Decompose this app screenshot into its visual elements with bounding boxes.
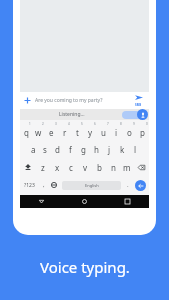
staticText: b	[97, 162, 102, 173]
staticText: Voice typing.	[40, 257, 130, 277]
button[interactable]: 3	[45, 120, 58, 140]
button[interactable]: English	[62, 181, 121, 190]
staticText: d	[55, 144, 60, 155]
button[interactable]: m	[120, 158, 134, 176]
button[interactable]: d	[51, 140, 64, 158]
button[interactable]: 7	[97, 120, 110, 140]
staticText: l	[134, 144, 137, 155]
button[interactable]: v	[78, 158, 92, 176]
button[interactable]: Enter	[132, 176, 149, 194]
staticText: n	[111, 162, 116, 173]
staticText: a	[31, 144, 36, 155]
button[interactable]: Backspace	[134, 158, 149, 176]
button[interactable]: Send SMS	[128, 92, 149, 109]
staticText: Listening...	[59, 111, 85, 118]
staticText: .	[127, 181, 129, 189]
button[interactable]: n	[106, 158, 120, 176]
button[interactable]: x	[50, 158, 64, 176]
button[interactable]: s	[39, 140, 51, 158]
staticText: 0	[146, 122, 148, 126]
staticText: 1	[29, 122, 31, 126]
button[interactable]: l	[129, 140, 142, 158]
staticText: r	[63, 127, 67, 138]
staticText: m	[123, 162, 131, 173]
button[interactable]: h	[90, 140, 103, 158]
staticText: 4	[68, 122, 70, 126]
button[interactable]: 9	[123, 120, 136, 140]
button[interactable]: Back	[20, 195, 63, 208]
staticText: 9	[133, 122, 135, 126]
staticText: f	[69, 144, 72, 155]
staticText: x	[55, 162, 60, 173]
staticText: e	[49, 127, 54, 138]
staticText: y	[88, 127, 93, 138]
staticText: 6	[94, 122, 96, 126]
staticText: ?123	[24, 182, 35, 189]
staticText: t	[76, 127, 79, 138]
staticText: 3	[55, 122, 57, 126]
button[interactable]: j	[103, 140, 116, 158]
staticText: q	[24, 127, 29, 138]
button[interactable]: 8	[110, 120, 123, 140]
button[interactable]: Add attachment	[20, 92, 35, 109]
button[interactable]: 5	[71, 120, 84, 140]
button[interactable]: ,	[39, 176, 48, 194]
button[interactable]: 2	[32, 120, 45, 140]
staticText: w	[35, 127, 42, 138]
button[interactable]: Emoji	[48, 176, 60, 194]
button[interactable]: g	[77, 140, 90, 158]
staticText: Are you coming to my party?	[35, 97, 128, 104]
staticText: 8	[120, 122, 122, 126]
staticText: o	[127, 127, 132, 138]
staticText: p	[140, 127, 145, 138]
button[interactable]: Shift	[20, 158, 35, 176]
staticText: English	[85, 183, 99, 188]
button[interactable]: 4	[58, 120, 71, 140]
staticText: c	[69, 162, 73, 173]
button[interactable]: c	[64, 158, 78, 176]
button[interactable]: 0	[136, 120, 149, 140]
button[interactable]: 6	[84, 120, 97, 140]
staticText: u	[101, 127, 106, 138]
staticText: k	[120, 144, 125, 155]
staticText: 2	[42, 122, 44, 126]
staticText: z	[41, 162, 45, 173]
button[interactable]: a	[27, 140, 39, 158]
staticText: h	[94, 144, 99, 155]
button[interactable]: Microphone	[137, 109, 148, 120]
staticText: 7	[107, 122, 109, 126]
staticText: i	[115, 127, 118, 138]
button[interactable]: k	[116, 140, 129, 158]
button[interactable]: 1	[20, 120, 32, 140]
button[interactable]: Recent apps	[106, 195, 149, 208]
button[interactable]: .	[123, 176, 132, 194]
staticText: SMS	[135, 103, 142, 107]
button[interactable]: b	[92, 158, 106, 176]
staticText: s	[43, 144, 47, 155]
button[interactable]: f	[64, 140, 77, 158]
button[interactable]: z	[35, 158, 50, 176]
staticText: g	[81, 144, 86, 155]
button[interactable]: Home	[63, 195, 106, 208]
staticText: v	[83, 162, 88, 173]
staticText: j	[108, 144, 111, 155]
staticText: 5	[81, 122, 83, 126]
button[interactable]: ?123	[20, 176, 39, 194]
staticText: ,	[43, 181, 45, 189]
